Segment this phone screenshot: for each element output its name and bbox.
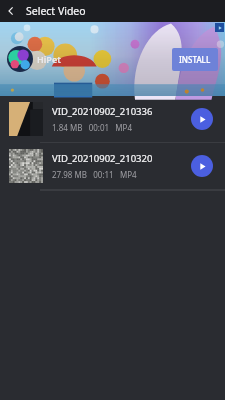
button[interactable]: Play VID_20210902_210320	[191, 155, 213, 177]
staticText: Select Video	[26, 4, 86, 18]
button[interactable]: Back	[0, 0, 22, 22]
staticText: VID_20210902_210336	[52, 105, 153, 118]
staticText: VID_20210902_210320	[52, 152, 153, 165]
button[interactable]: VID_20210902_210320	[0, 143, 225, 189]
staticText: 27.98 MB 00:11 MP4	[52, 169, 137, 180]
staticText: HiPet	[37, 53, 61, 65]
button[interactable]: Ad choices	[215, 23, 224, 32]
button[interactable]: INSTALL	[172, 48, 218, 71]
button[interactable]: HiPet	[0, 22, 225, 96]
button[interactable]: Play VID_20210902_210336	[191, 108, 213, 130]
staticText: 1.84 MB 00:01 MP4	[52, 122, 133, 133]
staticText: INSTALL	[179, 54, 211, 65]
button[interactable]: VID_20210902_210336	[0, 96, 225, 142]
